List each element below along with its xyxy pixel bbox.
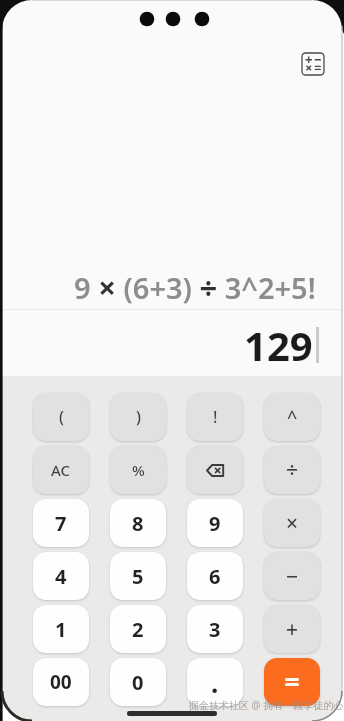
button[interactable]: ÷ [264,446,320,494]
staticText: 129 [244,318,313,372]
staticText: ( [59,406,64,428]
button[interactable]: % [110,446,166,494]
button[interactable]: . [187,658,243,706]
staticText: 2 [132,616,144,643]
staticText: 3 [209,616,221,643]
staticText: × [286,509,299,538]
staticText: 4 [55,563,67,590]
button[interactable]: ( [33,393,89,441]
button[interactable]: 2 [110,605,166,653]
staticText: % [132,460,145,480]
staticText: 9 × (6+3) ÷ 3^2+5! [74,266,316,308]
staticText: AC [51,460,71,480]
button[interactable]: ! [187,393,243,441]
button[interactable]: 6 [187,552,243,600]
staticText: + [286,615,299,644]
staticText: . [211,665,219,700]
button[interactable]: 00 [33,658,89,706]
staticText: 00 [50,669,72,695]
button[interactable]: AC [33,446,89,494]
staticText: 8 [132,510,144,537]
button[interactable]: 1 [33,605,89,653]
button[interactable]: × [264,499,320,547]
button[interactable]: 8 [110,499,166,547]
button[interactable]: 7 [33,499,89,547]
staticText: 0 [132,669,144,696]
staticText: 9 [209,510,221,537]
staticText: ^ [287,405,298,430]
button[interactable]: + [264,605,320,653]
staticText: ) [136,406,141,428]
button[interactable]: 5 [110,552,166,600]
button[interactable]: 9 [187,499,243,547]
button[interactable]: 3 [187,605,243,653]
button[interactable] [187,446,243,494]
button[interactable]: 4 [33,552,89,600]
staticText: 5 [132,563,144,590]
button[interactable]: ^ [264,393,320,441]
button[interactable] [299,50,327,78]
staticText: ! [213,406,218,428]
button[interactable] [264,658,320,706]
staticText: 掘金技术社区 @ 拥有一颗学徒的心 [189,698,344,712]
button[interactable]: ) [110,393,166,441]
staticText: 7 [55,510,67,537]
staticText: ÷ [286,456,299,485]
staticText: 1 [55,616,67,643]
staticText: − [286,562,299,591]
button[interactable]: 0 [110,658,166,706]
staticText: 6 [209,563,221,590]
button[interactable]: − [264,552,320,600]
